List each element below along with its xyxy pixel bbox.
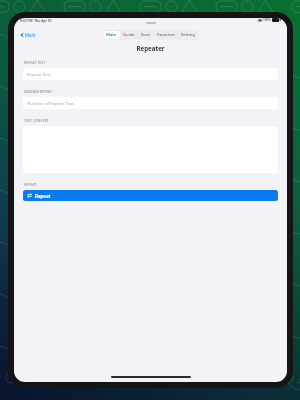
button[interactable]: Repeat Text [23, 68, 278, 80]
button[interactable]: Repeat [23, 190, 278, 201]
staticText: Repeater [14, 44, 287, 52]
staticText: Guide [123, 32, 135, 38]
staticText: Setting [181, 32, 195, 38]
button[interactable]: Main [103, 31, 120, 39]
button[interactable]: Guide [120, 31, 138, 39]
button[interactable]: Setting [178, 31, 198, 39]
staticText: Scan [141, 32, 151, 38]
staticText: Main [106, 32, 117, 38]
staticText: 100% [263, 18, 271, 22]
staticText: 9:33 PM Thu Apr 10 [20, 18, 52, 22]
button[interactable]: Scan [138, 31, 154, 39]
staticText: TEXT CONVERT [24, 118, 49, 123]
staticText: REPEAT TEXT [24, 60, 46, 65]
button[interactable]: Number of Repeat Text [23, 97, 278, 109]
button[interactable]: Favorites [154, 31, 178, 39]
button[interactable]: Main [18, 30, 38, 40]
staticText: Repeat [35, 193, 51, 199]
staticText: Number of Repeat Text [27, 100, 74, 106]
staticText: Repeat Text [27, 71, 51, 77]
staticText: REPEAT [24, 182, 37, 187]
staticText: NUMBER REPEAT [24, 89, 53, 94]
other: Repeat [27, 193, 32, 198]
staticText: Favorites [157, 32, 175, 38]
staticText: Main [25, 32, 36, 38]
